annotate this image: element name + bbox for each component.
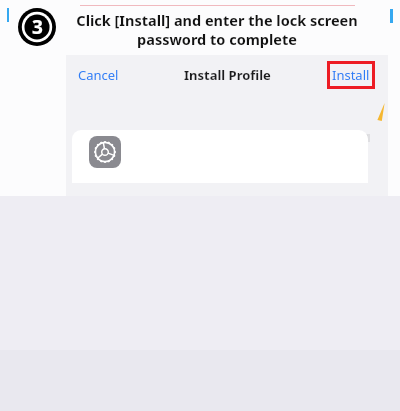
other: Settings xyxy=(89,136,121,168)
staticText: Cancel xyxy=(78,66,119,84)
button[interactable]: Cancel xyxy=(74,60,123,90)
staticText: Install xyxy=(332,66,370,84)
staticText: Click [Install] and enter the lock scree… xyxy=(76,10,358,49)
button[interactable]: Settings xyxy=(72,130,368,183)
button[interactable]: Install xyxy=(327,61,375,89)
staticText: Install Profile xyxy=(184,66,271,84)
staticText: 3 xyxy=(32,14,43,40)
